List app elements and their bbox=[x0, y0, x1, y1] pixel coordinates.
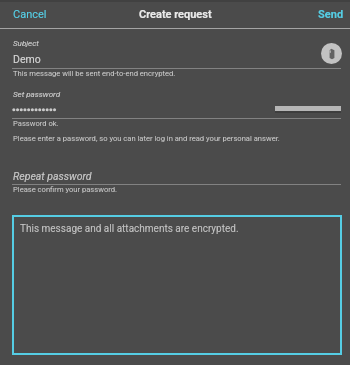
staticText: Please enter a password, so you can late… bbox=[13, 134, 280, 143]
button[interactable]: Cancel bbox=[0, 1, 61, 27]
button[interactable]: Attach file bbox=[321, 43, 342, 64]
staticText: Subject bbox=[13, 39, 39, 48]
staticText: Cancel bbox=[13, 8, 47, 21]
button[interactable]: Send bbox=[304, 1, 350, 27]
button[interactable]: This message and all attachments are enc… bbox=[12, 215, 342, 355]
staticText: Demo bbox=[13, 53, 41, 65]
staticText: Please confirm your password. bbox=[13, 185, 118, 194]
staticText: Repeat password bbox=[13, 170, 92, 182]
staticText: Create request bbox=[139, 8, 212, 21]
staticText: Password ok. bbox=[13, 119, 59, 128]
staticText: This message will be sent end-to-end enc… bbox=[13, 69, 176, 78]
staticText: Send bbox=[318, 8, 344, 21]
staticText: Set password bbox=[13, 90, 61, 99]
staticText: This message and all attachments are enc… bbox=[20, 223, 239, 235]
